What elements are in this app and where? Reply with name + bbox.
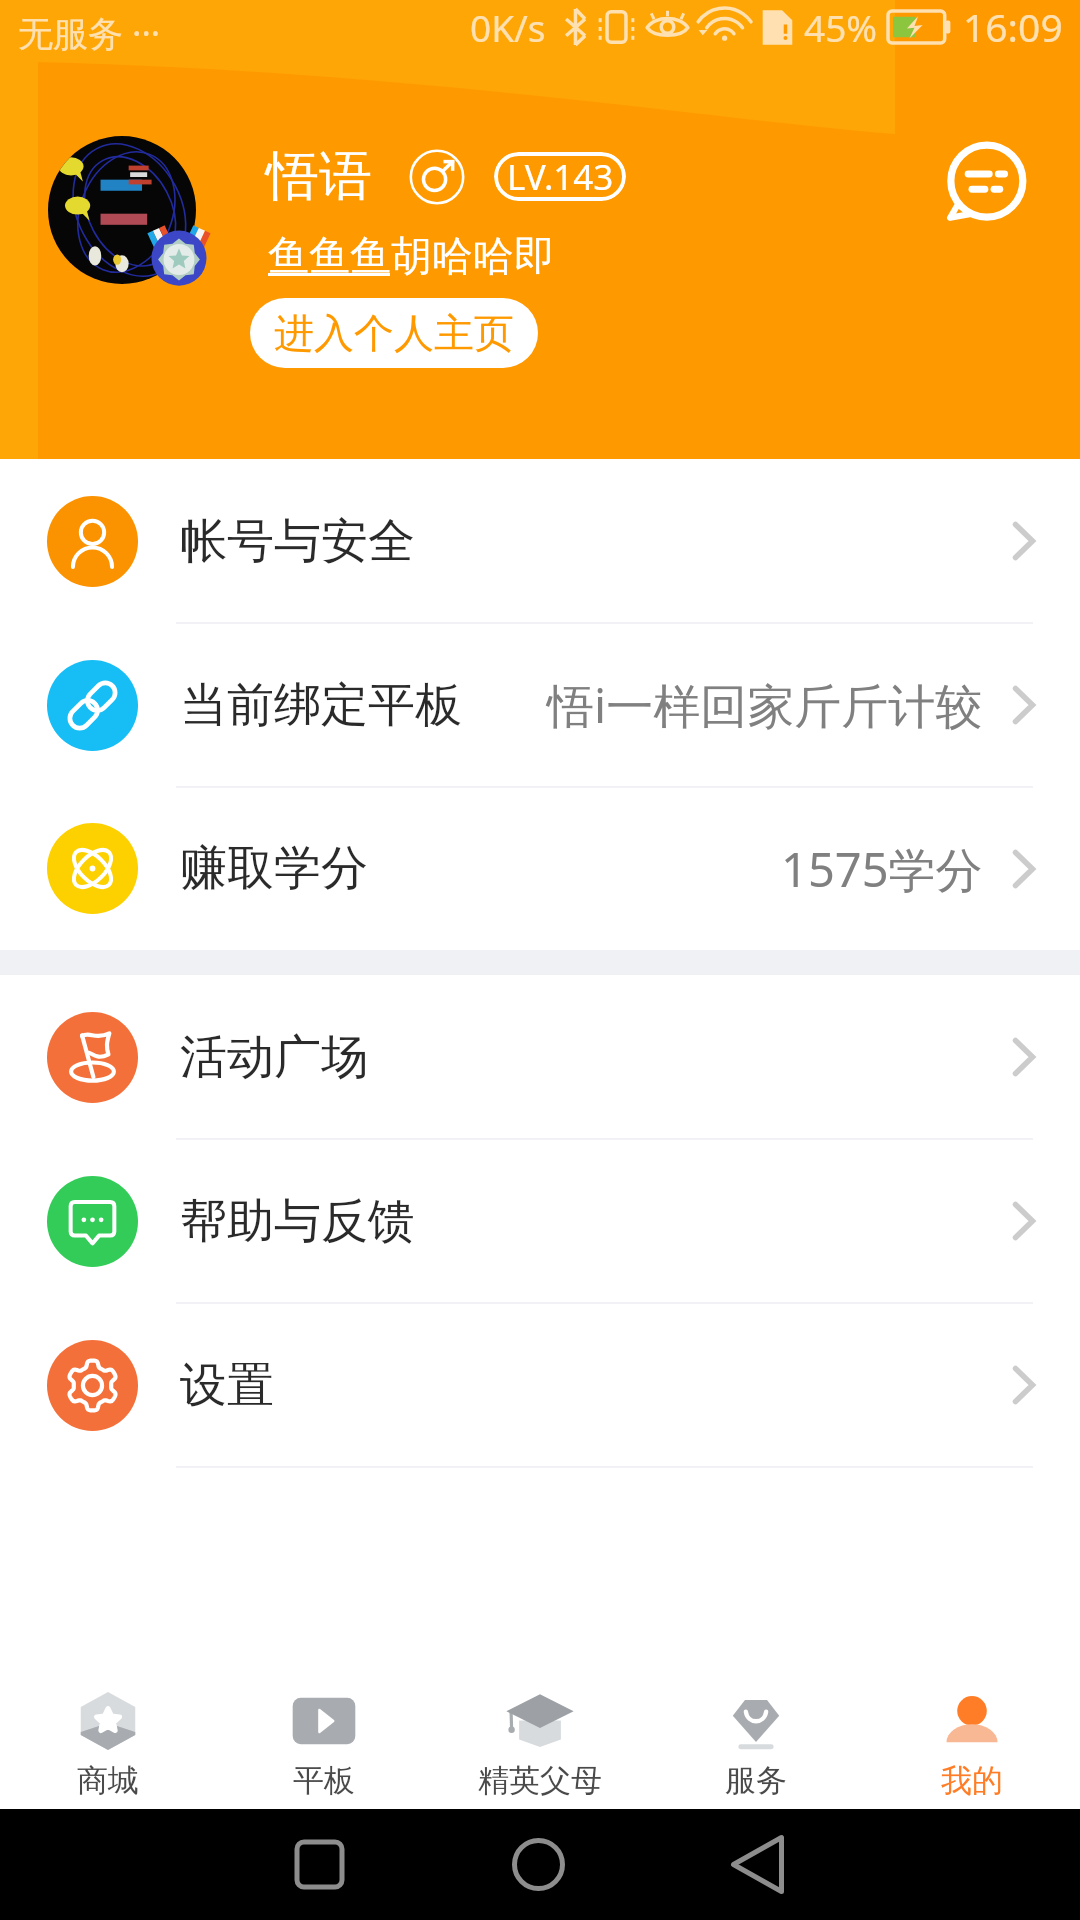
staticText: 活动广场: [180, 1028, 368, 1087]
staticText: 服务: [725, 1761, 787, 1800]
staticText: 进入个人主页: [274, 308, 514, 358]
staticText: 16:09: [963, 0, 1063, 53]
staticText: 鱼鱼鱼胡哈哈即: [268, 231, 555, 283]
staticText: 0K/s: [470, 2, 546, 52]
staticText: 悟i一样回家斤斤计较: [547, 673, 983, 737]
button[interactable]: 赚取学分: [0, 787, 1080, 950]
staticText: 悟语: [266, 143, 372, 210]
staticText: 精英父母: [478, 1761, 602, 1800]
button[interactable]: 平板: [216, 1651, 432, 1809]
staticText: 45%: [804, 2, 878, 52]
button[interactable]: 商城: [0, 1651, 216, 1809]
button[interactable]: 帮助与反馈: [0, 1139, 1080, 1303]
staticText: 当前绑定平板: [180, 676, 462, 735]
button[interactable]: 活动广场: [0, 975, 1080, 1139]
staticText: 商城: [77, 1761, 139, 1800]
staticText: 帮助与反馈: [180, 1192, 415, 1251]
button[interactable]: Messages: [935, 136, 1031, 232]
button[interactable]: Recent apps: [264, 1809, 374, 1920]
button[interactable]: 当前绑定平板: [0, 623, 1080, 787]
button[interactable]: 帐号与安全: [0, 459, 1080, 623]
staticText: 无服务 ···: [18, 9, 161, 57]
staticText: 平板: [293, 1761, 355, 1800]
button[interactable]: 设置: [0, 1303, 1080, 1467]
staticText: LV.143: [507, 153, 614, 201]
button[interactable]: Profile avatar: [48, 136, 196, 284]
button[interactable]: 服务: [648, 1651, 864, 1809]
button[interactable]: 我的: [864, 1651, 1080, 1809]
staticText: 赚取学分: [180, 839, 368, 898]
staticText: 1575学分: [781, 837, 983, 901]
button[interactable]: Home: [483, 1809, 593, 1920]
button[interactable]: 进入个人主页: [250, 298, 538, 368]
staticText: 帐号与安全: [180, 512, 415, 571]
staticText: 设置: [180, 1356, 274, 1415]
button[interactable]: 精英父母: [432, 1651, 648, 1809]
staticText: 我的: [941, 1761, 1003, 1800]
button[interactable]: 悟语: [266, 143, 626, 210]
button[interactable]: Back: [702, 1809, 812, 1920]
